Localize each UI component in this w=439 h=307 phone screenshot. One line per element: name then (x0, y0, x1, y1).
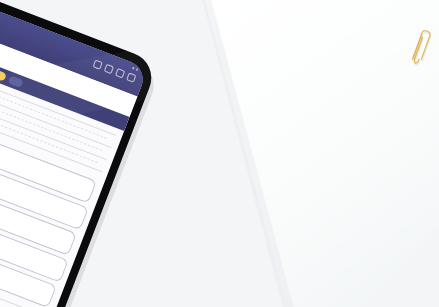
other: Workflow app on phone with paperclip (0, 0, 439, 307)
button[interactable] (0, 0, 439, 307)
